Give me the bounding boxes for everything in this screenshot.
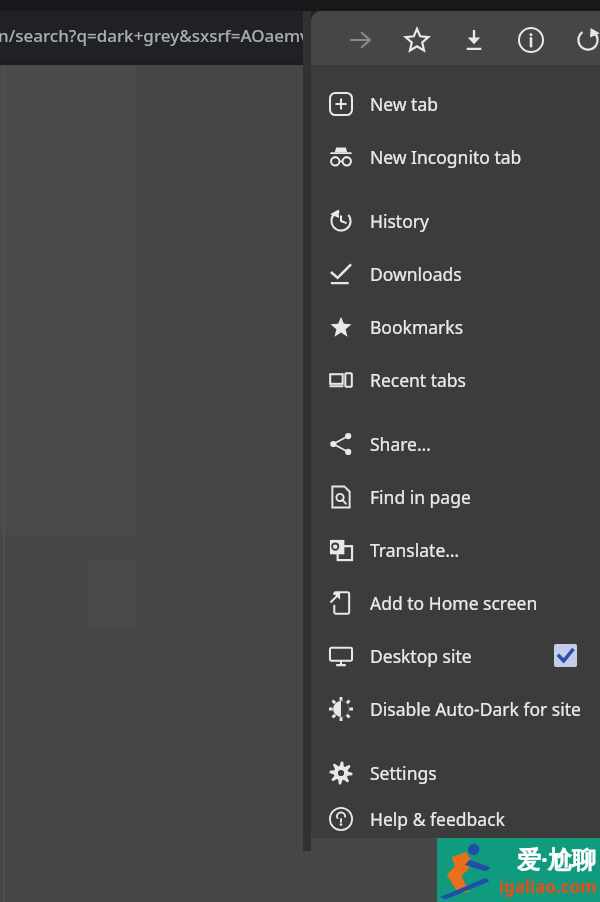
button[interactable]: Translate…: [311, 523, 600, 576]
staticText: Downloads: [370, 262, 462, 286]
button[interactable]: Settings: [311, 746, 600, 799]
staticText: n/search?q=dark+grey&sxsrf=AOaemvIG: [0, 24, 328, 47]
staticText: Translate…: [370, 538, 460, 562]
button[interactable]: Bookmarks: [311, 300, 600, 353]
staticText: Find in page: [370, 485, 471, 509]
button[interactable]: Page info: [511, 20, 551, 60]
staticText: Add to Home screen: [370, 591, 538, 615]
button[interactable]: Download page: [454, 20, 494, 60]
button[interactable]: Disable Auto-Dark for site: [311, 682, 600, 735]
button[interactable]: Recent tabs: [311, 353, 600, 406]
staticText: New Incognito tab: [370, 145, 522, 169]
staticText: Disable Auto-Dark for site: [370, 697, 581, 721]
button[interactable]: Forward: [340, 20, 380, 60]
staticText: igaliao.com: [499, 875, 597, 898]
button[interactable]: Share…: [311, 417, 600, 470]
button[interactable]: Reload: [568, 20, 600, 60]
staticText: Share…: [370, 432, 431, 456]
staticText: Recent tabs: [370, 368, 466, 392]
staticText: Desktop site: [370, 644, 472, 668]
staticText: Settings: [370, 761, 437, 785]
staticText: Help & feedback: [370, 807, 505, 831]
button[interactable]: Desktop site: [311, 629, 600, 682]
button[interactable]: New tab: [311, 77, 600, 130]
staticText: Bookmarks: [370, 315, 464, 339]
button[interactable]: Bookmark this page: [397, 20, 437, 60]
button[interactable]: Help & feedback: [311, 799, 600, 838]
button[interactable]: Add to Home screen: [311, 576, 600, 629]
button[interactable]: Find in page: [311, 470, 600, 523]
staticText: 爱·尬聊: [517, 842, 596, 875]
staticText: New tab: [370, 92, 439, 116]
button[interactable]: New Incognito tab: [311, 130, 600, 183]
button[interactable]: History: [311, 194, 600, 247]
staticText: History: [370, 209, 429, 233]
button[interactable]: Downloads: [311, 247, 600, 300]
